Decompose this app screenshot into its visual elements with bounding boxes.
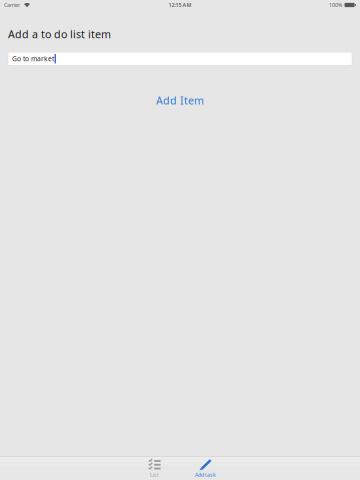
staticText: Add task [195,471,216,478]
staticText: Add a to do list item [8,27,111,41]
staticText: 12:15 AM [168,1,191,9]
staticText: Go to market [12,54,54,63]
staticText: List [150,471,159,478]
staticText: Carrier [4,1,20,9]
button[interactable]: Add task [181,456,229,480]
button[interactable]: Go to market [8,52,352,65]
staticText: Add Item [156,93,204,107]
staticText: 100% [329,1,342,9]
button[interactable]: Add Item [0,90,360,110]
button[interactable]: List [130,456,178,480]
